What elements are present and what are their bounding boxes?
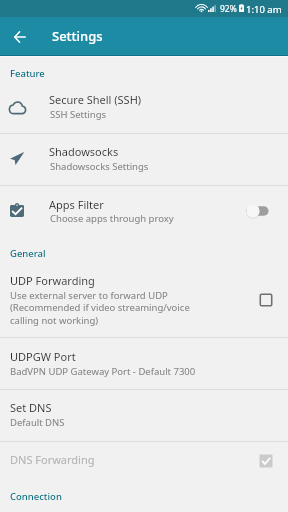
button[interactable]: UDP Forwarding — [0, 268, 288, 337]
staticText: Set DNS — [10, 400, 52, 415]
button[interactable]: Checkbox — [253, 287, 279, 313]
staticText: Use external server to forward UDP — [10, 289, 168, 302]
button[interactable]: Set DNS — [0, 390, 288, 441]
staticText: 92% — [220, 3, 237, 15]
staticText: General — [10, 247, 46, 260]
button[interactable]: Apps Filter — [0, 186, 288, 232]
button[interactable]: UDPGW Port — [0, 338, 288, 389]
staticText: BadVPN UDP Gateway Port - Default 7300 — [10, 365, 196, 378]
staticText: UDPGW Port — [10, 349, 76, 364]
staticText: (Recommended if video streaming/voice — [10, 301, 190, 314]
staticText: Default DNS — [10, 416, 65, 429]
staticText: Settings — [52, 27, 103, 45]
button[interactable]: DNS Forwarding — [0, 442, 288, 478]
staticText: Apps Filter — [49, 197, 104, 212]
button[interactable]: Secure Shell (SSH) — [0, 57, 288, 133]
button[interactable]: Apps Filter toggle — [237, 198, 269, 224]
staticText: Shadowsocks Settings — [50, 160, 149, 173]
staticText: Choose apps through proxy — [50, 212, 174, 225]
staticText: Secure Shell (SSH) — [49, 92, 142, 107]
button[interactable]: Checkbox — [253, 448, 279, 474]
staticText: Shadowsocks — [49, 144, 119, 159]
button[interactable]: Shadowsocks — [0, 134, 288, 185]
staticText: UDP Forwarding — [10, 273, 95, 288]
staticText: DNS Forwarding — [10, 452, 95, 467]
button[interactable]: Back — [1, 18, 39, 56]
staticText: SSH Settings — [50, 108, 107, 121]
staticText: Feature — [10, 67, 45, 80]
staticText: Connection — [10, 490, 62, 503]
staticText: 1:10 am — [246, 3, 282, 16]
staticText: calling not working) — [10, 314, 99, 327]
